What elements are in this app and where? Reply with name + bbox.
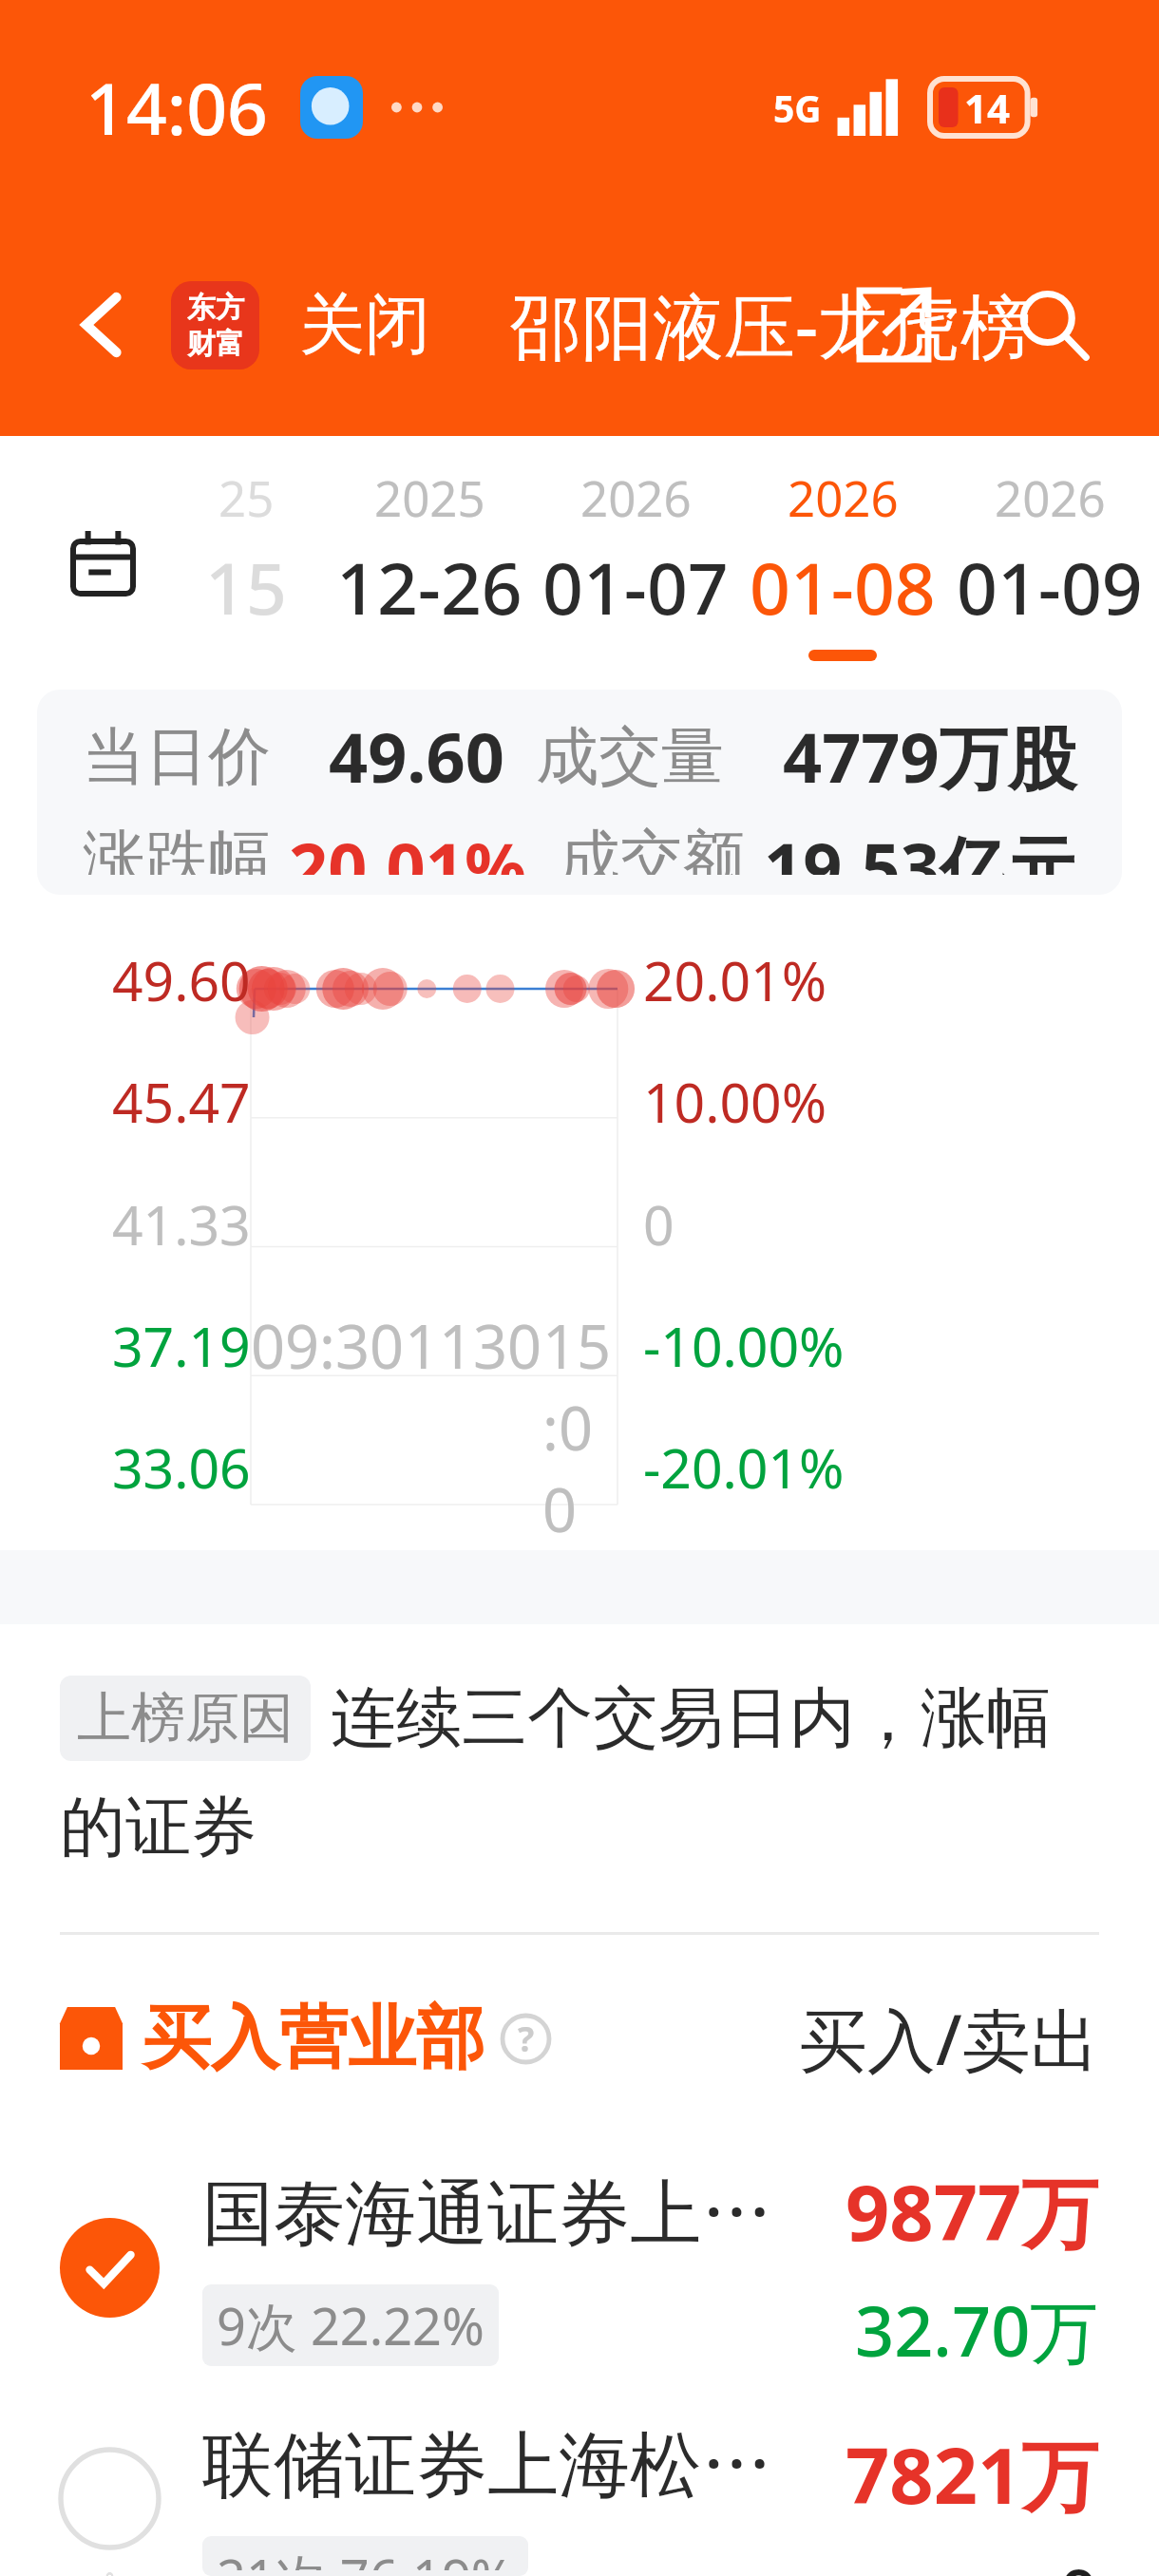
staticText: 0 <box>1059 2547 1099 2576</box>
staticText: 15 <box>205 539 287 635</box>
button[interactable]: Calendar <box>40 501 165 626</box>
staticText: 9次 22.22% <box>217 2290 484 2360</box>
staticText: 财富 <box>187 326 244 362</box>
button[interactable]: Search <box>988 259 1119 390</box>
staticText: 25 <box>218 464 275 530</box>
staticText: ? <box>518 2016 535 2062</box>
staticText: 5G <box>773 83 822 133</box>
staticText: -10.00% <box>643 1309 845 1383</box>
button[interactable]: 国泰海通证券上海浦东新区… <box>0 2113 1159 2421</box>
staticText: 的证券 <box>60 1787 256 1869</box>
staticText: 14 <box>964 81 1011 135</box>
staticText: 连续三个交易日内，涨幅偏离值累计达到30% <box>331 1677 1099 1760</box>
staticText: 联储证券上海松林路证券营… <box>202 2421 817 2510</box>
staticText: 19.53亿元 <box>764 820 1076 875</box>
staticText: 20.01% <box>643 943 827 1017</box>
staticText: 2025 <box>374 464 485 530</box>
staticText: 49.60 <box>112 943 251 1017</box>
staticText: 33.06 <box>112 1430 251 1505</box>
staticText: 41.33 <box>112 1187 251 1261</box>
button[interactable]: Back <box>40 262 165 388</box>
staticText: 14:06 <box>85 59 269 156</box>
staticText: 1130 <box>405 1305 542 1387</box>
staticText: 成交量 <box>536 717 724 796</box>
staticText: 01-09 <box>957 539 1143 635</box>
staticText: 买入/卖出 <box>799 1992 1099 2085</box>
staticText: 国泰海通证券上海浦东新区… <box>202 2169 817 2259</box>
button[interactable]: 25 <box>165 436 326 690</box>
staticText: 45.47 <box>112 1065 251 1139</box>
staticText: 01-07 <box>542 539 729 635</box>
staticText: 20.01% <box>289 820 526 875</box>
staticText: 4779万股 <box>783 710 1076 803</box>
staticText: 15:00 <box>542 1305 617 1550</box>
staticText: 东方 <box>187 290 244 326</box>
staticText: 2026 <box>788 464 899 530</box>
staticText: 涨跌幅 <box>83 820 271 875</box>
staticText: 49.60 <box>329 710 504 803</box>
staticText: 21次 76.19% <box>217 2542 514 2570</box>
button[interactable]: Help <box>502 2015 550 2063</box>
staticText: 成交额 <box>558 820 746 875</box>
staticText: 7821万 <box>845 2421 1099 2527</box>
button[interactable]: 联储证券上海松林路证券营… <box>0 2421 1159 2576</box>
staticText: 09:30 <box>251 1305 405 1387</box>
button[interactable]: 2025 <box>326 436 532 690</box>
staticText: 邵阳液压-龙虎榜 <box>510 276 1033 373</box>
staticText: 2026 <box>580 464 692 530</box>
staticText: 10.00% <box>643 1065 827 1139</box>
staticText: 0 <box>643 1187 674 1261</box>
staticText: -20.01% <box>643 1430 845 1505</box>
staticText: 2026 <box>995 464 1106 530</box>
staticText: 9877万 <box>845 2158 1099 2263</box>
staticText: 当日价 <box>83 717 271 796</box>
button[interactable]: 东方财富 <box>171 281 259 369</box>
staticText: 32.70万 <box>855 2283 1099 2377</box>
button[interactable]: 2026 <box>739 436 946 690</box>
staticText: 上榜原因 <box>77 1684 294 1752</box>
staticText: 关闭 <box>299 284 430 367</box>
staticText: 37.19 <box>112 1309 251 1383</box>
button[interactable]: 关闭 <box>294 273 436 378</box>
button[interactable]: 2026 <box>946 436 1153 690</box>
staticText: 买入营业部 <box>142 1996 484 2082</box>
button[interactable]: Share <box>828 259 959 390</box>
button[interactable]: 2026 <box>532 436 739 690</box>
staticText: 01-08 <box>750 539 936 635</box>
staticText: 12-26 <box>336 539 522 635</box>
